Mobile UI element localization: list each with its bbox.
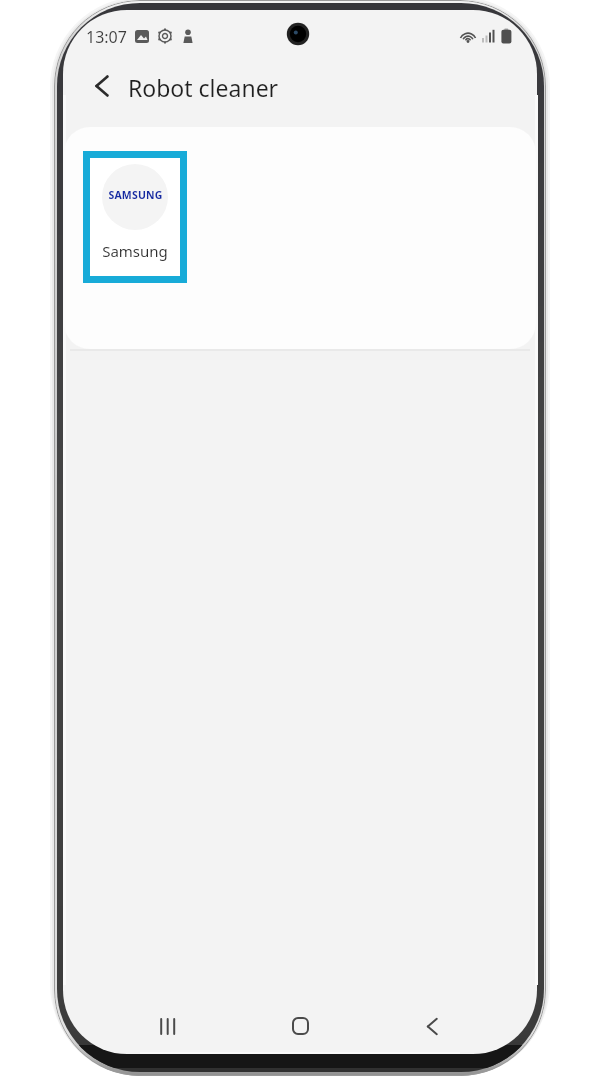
button[interactable] [146, 1004, 190, 1048]
staticText: Robot cleaner [128, 72, 279, 103]
button[interactable] [278, 1004, 322, 1048]
staticText: Samsung [102, 241, 168, 261]
staticText: SAMSUNG [108, 188, 163, 202]
button[interactable] [82, 67, 122, 107]
button[interactable] [410, 1004, 454, 1048]
staticText: 13:07 [86, 26, 127, 48]
button[interactable]: SAMSUNG [83, 151, 187, 283]
